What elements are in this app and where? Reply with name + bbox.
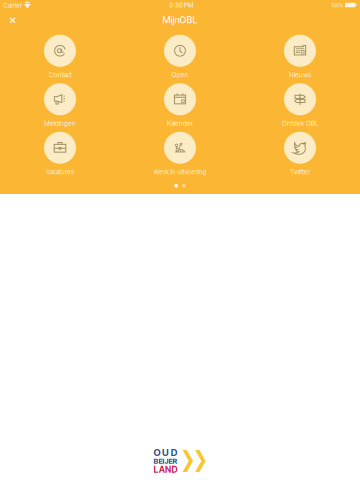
button[interactable]: Close <box>0 8 25 32</box>
staticText: Twitter <box>290 168 310 176</box>
button[interactable]: Meldingen <box>0 83 120 132</box>
staticText: MijnOBL <box>162 14 197 25</box>
staticText: Kalender <box>167 119 193 127</box>
staticText: BEIJER <box>153 456 177 465</box>
button[interactable]: Contact <box>0 35 120 83</box>
staticText: 100% <box>331 2 343 9</box>
staticText: Nieuws <box>289 71 311 79</box>
button[interactable]: Ontdek OBL <box>240 83 360 132</box>
button[interactable]: Open <box>120 35 240 83</box>
staticText: Carrier <box>3 1 22 9</box>
button[interactable]: Kalender <box>120 83 240 132</box>
staticText: OUD <box>153 447 178 458</box>
button[interactable]: Vacatures <box>0 132 120 180</box>
staticText: LAND <box>153 464 177 475</box>
staticText: Contact <box>48 71 71 79</box>
staticText: Werk in uitvoering <box>153 168 206 176</box>
staticText: Vacatures <box>46 168 74 176</box>
button[interactable]: Twitter <box>240 132 360 180</box>
staticText: Open <box>171 71 188 79</box>
staticText: 3:30 PM <box>169 1 193 9</box>
staticText: Ontdek OBL <box>282 119 318 127</box>
staticText: Meldingen <box>44 119 76 127</box>
button[interactable]: Werk in uitvoering <box>120 132 240 180</box>
button[interactable]: Nieuws <box>240 35 360 83</box>
